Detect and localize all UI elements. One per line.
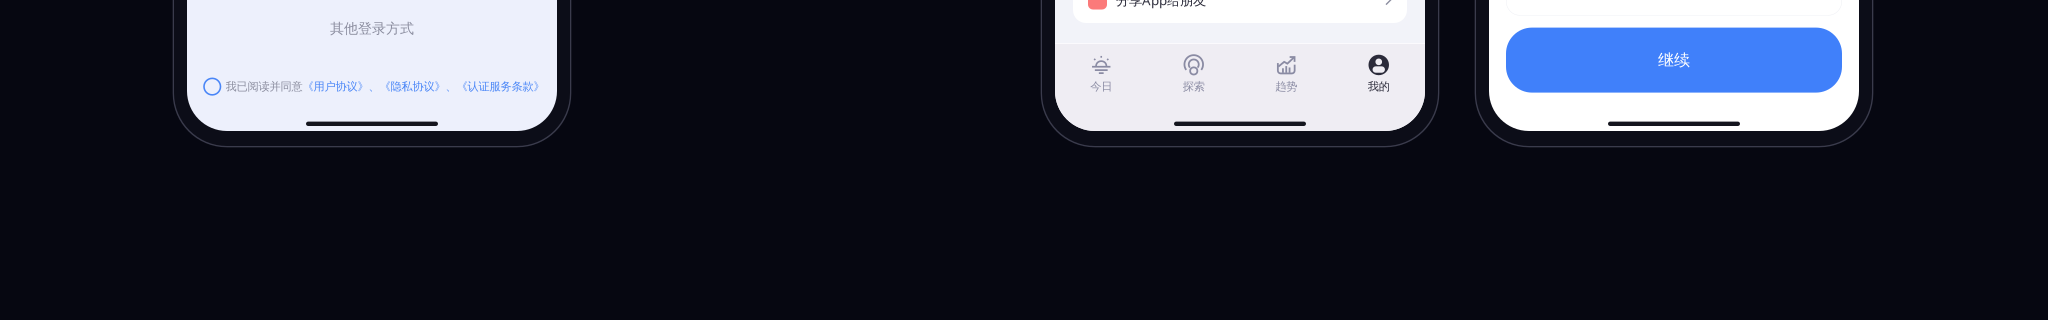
staticText: 《用户协议》、《隐私协议》、《认证服务条款》 <box>302 79 544 94</box>
staticText: 探索 <box>1183 79 1205 93</box>
staticText: 其他登录方式 <box>330 20 414 37</box>
button[interactable]: 趋势 <box>1240 49 1332 99</box>
button[interactable]: 我已阅读并同意 <box>187 77 557 97</box>
button[interactable]: 其他登录方式 <box>187 19 557 39</box>
staticText: 分享App给朋友 <box>1116 0 1206 9</box>
button[interactable]: 今日 <box>1055 49 1147 99</box>
button[interactable]: 探索 <box>1147 49 1240 99</box>
staticText: 我已阅读并同意 <box>225 79 302 94</box>
staticText: 继续 <box>1658 50 1690 70</box>
button[interactable]: 我的 <box>1332 49 1425 99</box>
staticText: 趋势 <box>1275 79 1297 93</box>
button[interactable]: 继续 <box>1506 28 1842 93</box>
staticText: 我的 <box>1368 79 1390 93</box>
staticText: 今日 <box>1090 79 1112 93</box>
